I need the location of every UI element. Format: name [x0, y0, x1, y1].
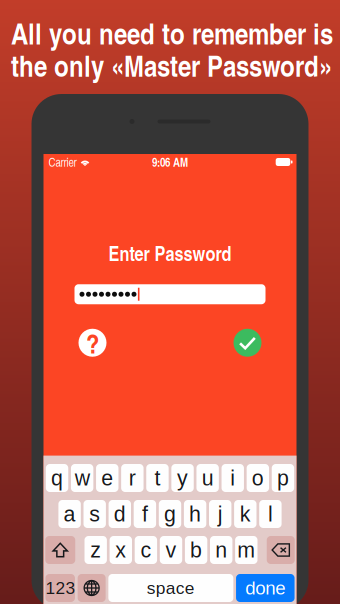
button[interactable]: b	[185, 536, 207, 564]
staticText: s	[89, 502, 100, 526]
staticText: y	[177, 466, 188, 490]
staticText: done	[245, 578, 285, 598]
button[interactable]: k	[234, 500, 256, 528]
staticText: q	[51, 466, 63, 490]
button[interactable]: Help	[78, 329, 106, 357]
button[interactable]: f	[134, 500, 156, 528]
staticText: 9:06 AM	[152, 153, 188, 170]
button[interactable]: a	[58, 500, 81, 528]
staticText: k	[240, 502, 251, 526]
staticText: t	[154, 466, 160, 490]
button[interactable]: d	[109, 500, 131, 528]
button[interactable]: g	[159, 500, 181, 528]
staticText: c	[140, 538, 151, 562]
staticText: z	[90, 538, 101, 562]
staticText: f	[142, 502, 148, 526]
staticText: ?	[86, 324, 99, 362]
staticText: v	[165, 538, 176, 562]
staticText: l	[268, 502, 273, 526]
button[interactable]: u	[196, 464, 219, 492]
staticText: space	[147, 578, 195, 598]
button[interactable]: Switch keyboard	[78, 574, 106, 602]
button[interactable]: 123	[45, 574, 75, 602]
button[interactable]: v	[160, 536, 182, 564]
staticText: a	[64, 502, 76, 526]
button[interactable]: p	[272, 464, 294, 492]
staticText: x	[115, 538, 126, 562]
staticText: i	[230, 466, 235, 490]
button[interactable]: e	[96, 464, 118, 492]
staticText: o	[252, 466, 264, 490]
button[interactable]: y	[171, 464, 194, 492]
button[interactable]: j	[209, 500, 231, 528]
button[interactable]: x	[110, 536, 132, 564]
staticText: Enter Password	[108, 239, 231, 267]
staticText: m	[237, 538, 255, 562]
staticText: p	[277, 466, 289, 490]
button[interactable]: l	[259, 500, 282, 528]
staticText: 123	[45, 578, 75, 598]
button[interactable]: Delete	[267, 536, 295, 564]
button[interactable]: r	[121, 464, 143, 492]
button[interactable]: o	[247, 464, 269, 492]
staticText: g	[164, 502, 176, 526]
button[interactable]: Confirm	[233, 329, 261, 357]
button[interactable]: s	[83, 500, 106, 528]
button[interactable]: z	[84, 536, 107, 564]
staticText: the only «Master Password»	[11, 44, 332, 86]
button[interactable]: n	[210, 536, 232, 564]
button[interactable]: q	[46, 464, 68, 492]
button[interactable]: i	[221, 464, 244, 492]
staticText: All you need to remember is	[11, 12, 333, 53]
staticText: w	[75, 466, 90, 490]
staticText: e	[101, 466, 113, 490]
staticText: h	[189, 502, 201, 526]
button[interactable]: Shift	[45, 536, 75, 564]
button[interactable]: Password field	[74, 284, 265, 304]
staticText: r	[129, 466, 136, 490]
button[interactable]: w	[71, 464, 93, 492]
button[interactable]: c	[135, 536, 157, 564]
staticText: n	[215, 538, 227, 562]
button[interactable]: done	[236, 574, 295, 602]
staticText: Carrier	[48, 154, 76, 170]
button[interactable]: space	[108, 574, 233, 602]
staticText: b	[190, 538, 202, 562]
staticText: d	[114, 502, 126, 526]
button[interactable]: h	[184, 500, 206, 528]
staticText: u	[202, 466, 214, 490]
staticText: j	[218, 502, 223, 526]
button[interactable]: t	[146, 464, 169, 492]
button[interactable]: m	[235, 536, 257, 564]
